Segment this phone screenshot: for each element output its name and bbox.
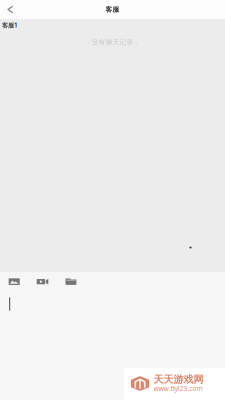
button[interactable]: Back [2,1,19,18]
staticText: www.ttyl23.com [153,384,202,393]
staticText: - 没有聊天记录 - [87,37,137,46]
staticText: 天天游戏网 [153,373,203,386]
button[interactable]: Send file [65,278,76,285]
button[interactable]: Send photo [9,278,20,285]
button[interactable]: Send video [37,278,48,285]
staticText: 客服1 [2,21,18,29]
staticText: 客服 [105,5,119,14]
